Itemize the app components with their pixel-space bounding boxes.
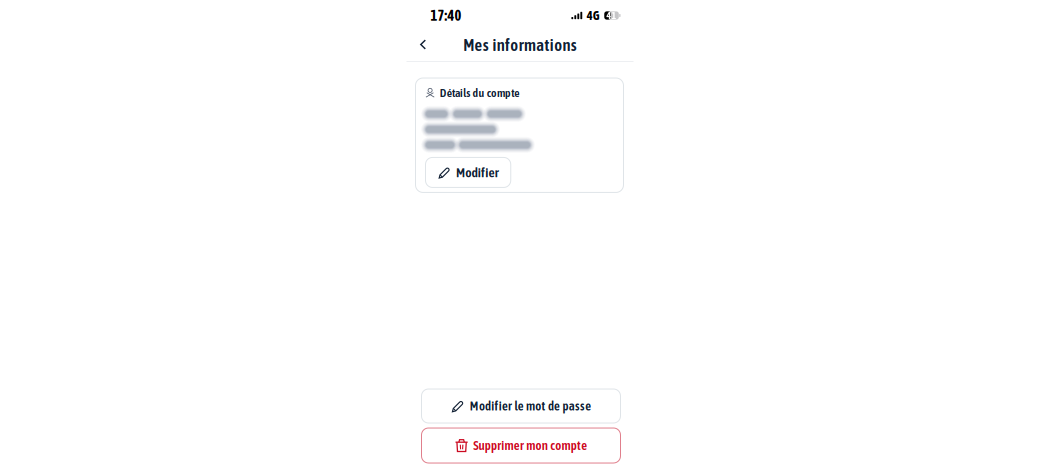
button[interactable]: Modifier [425, 157, 511, 187]
button[interactable]: Modifier le mot de passe [421, 389, 620, 423]
staticText: 4G [587, 8, 600, 23]
staticText: Mes informations [463, 35, 577, 54]
staticText: Modifier le mot de passe [470, 399, 591, 413]
staticText: Supprimer mon compte [473, 438, 587, 453]
button[interactable]: Back [410, 33, 436, 59]
staticText: 41 [606, 10, 616, 21]
staticText: Modifier [456, 165, 499, 180]
button[interactable]: Supprimer mon compte [421, 428, 620, 463]
staticText: Détails du compte [440, 86, 519, 99]
staticText: 17:40 [430, 7, 461, 24]
